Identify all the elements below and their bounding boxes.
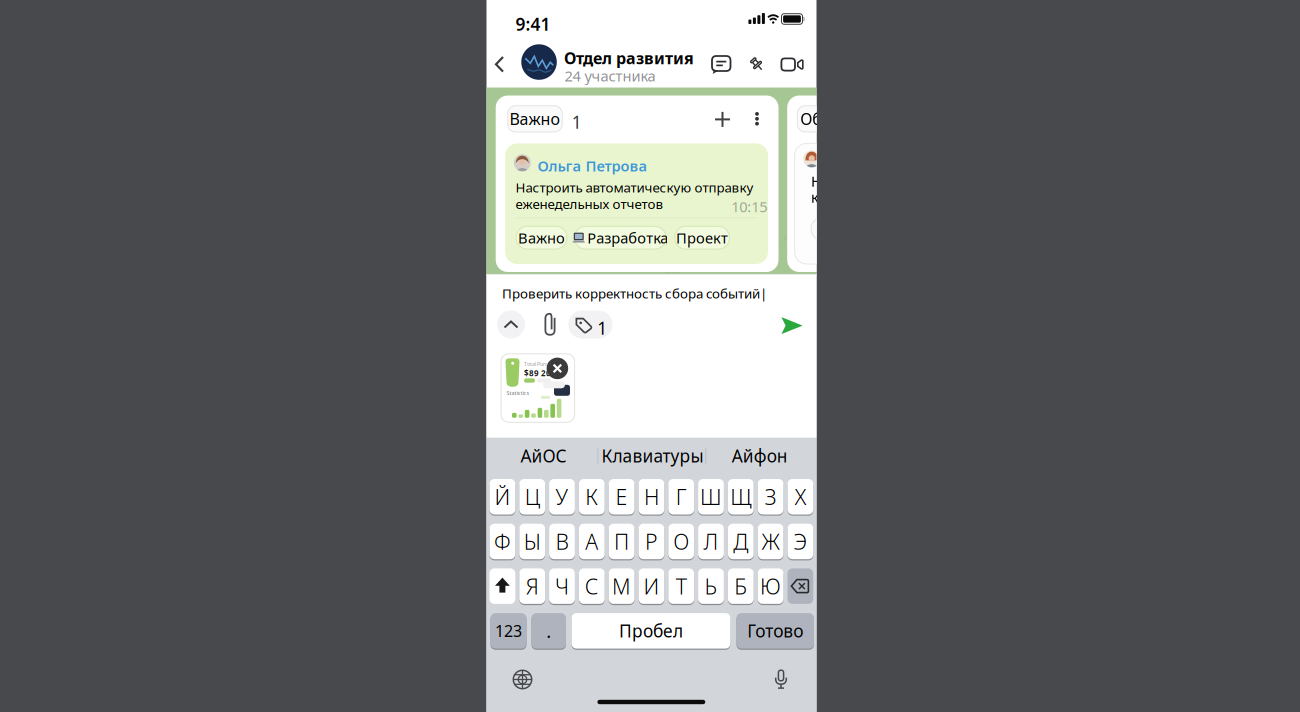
button[interactable]: М: [609, 568, 634, 604]
staticText: 24 участника: [564, 66, 655, 85]
button[interactable]: Х: [787, 479, 813, 514]
button[interactable]: Й: [489, 479, 515, 514]
button[interactable]: Ц: [519, 479, 545, 514]
staticText: АйОС: [520, 444, 566, 467]
button[interactable]: Меню: [751, 111, 763, 127]
button[interactable]: Айфон: [710, 441, 810, 471]
button[interactable]: Г: [668, 479, 694, 514]
staticText: О: [673, 527, 689, 556]
button[interactable]: Щ: [728, 479, 754, 514]
button[interactable]: Прикрепить файл: [543, 312, 559, 337]
button[interactable]: Р: [638, 524, 664, 559]
staticText: Ф: [494, 527, 511, 556]
staticText: А: [585, 527, 598, 556]
staticText: Т: [676, 572, 687, 600]
button[interactable]: Ч: [549, 568, 575, 604]
button[interactable]: Ш: [698, 479, 724, 514]
staticText: Д: [733, 527, 748, 556]
button[interactable]: Пробел: [571, 613, 730, 649]
button[interactable]: Е: [609, 479, 634, 514]
button[interactable]: Э: [787, 524, 813, 559]
staticText: 10:15: [731, 197, 767, 216]
button[interactable]: .: [531, 613, 566, 649]
button[interactable]: Удалить вложение: [547, 358, 568, 379]
staticText: Ю: [760, 572, 781, 600]
button[interactable]: Теги: [568, 311, 613, 338]
staticText: И: [643, 572, 659, 600]
staticText: Ь: [704, 572, 717, 600]
staticText: Пробел: [619, 619, 683, 642]
button[interactable]: В: [549, 524, 575, 559]
button[interactable]: Сменить клавиатуру: [512, 669, 532, 689]
button[interactable]: Удалить: [787, 568, 813, 604]
button[interactable]: Вложение: скриншот статистики: [501, 354, 575, 422]
staticText: Б: [734, 572, 747, 600]
staticText: Total Purchase: [524, 360, 560, 367]
staticText: 1: [572, 110, 582, 133]
button[interactable]: АйОС: [493, 441, 593, 471]
staticText: Г: [676, 483, 687, 511]
button[interactable]: О: [668, 524, 694, 559]
button[interactable]: Видеозвонок: [780, 57, 803, 73]
staticText: Важно: [518, 228, 565, 247]
staticText: Ц: [525, 483, 540, 511]
button[interactable]: Добавить: [714, 111, 730, 127]
button[interactable]: Важно: [516, 226, 567, 249]
staticText: Айфон: [732, 444, 788, 467]
button[interactable]: А: [579, 524, 605, 559]
button[interactable]: 123: [490, 613, 526, 649]
staticText: Проект: [676, 228, 728, 247]
staticText: С: [585, 572, 599, 600]
button[interactable]: Важно: [508, 106, 562, 132]
button[interactable]: Н: [638, 479, 664, 514]
button[interactable]: Ю: [758, 568, 783, 604]
button[interactable]: У: [549, 479, 575, 514]
staticText: еженедельных отчетов: [516, 195, 664, 213]
staticText: Е: [616, 483, 628, 511]
staticText: Настроить автоматическую отправку: [516, 178, 754, 196]
button[interactable]: Комментарии: [710, 54, 732, 76]
staticText: Л: [703, 527, 718, 556]
button[interactable]: Проект: [675, 226, 729, 249]
button[interactable]: Д: [728, 524, 754, 559]
button[interactable]: Готово: [736, 613, 814, 649]
staticText: Ольга Петрова: [537, 156, 647, 175]
button[interactable]: Разработка: [575, 226, 666, 249]
staticText: $89 203: [524, 368, 556, 378]
button[interactable]: Диктовка: [775, 669, 787, 689]
button[interactable]: Отправить: [781, 317, 803, 335]
staticText: У: [555, 483, 568, 511]
button[interactable]: Ь: [698, 568, 724, 604]
button[interactable]: Назад: [489, 50, 509, 78]
staticText: Й: [494, 483, 510, 511]
staticText: К: [585, 483, 598, 511]
button[interactable]: З: [758, 479, 783, 514]
button[interactable]: Л: [698, 524, 724, 559]
staticText: В: [555, 527, 568, 556]
staticText: Э: [793, 527, 807, 556]
staticText: .: [546, 618, 551, 643]
staticText: Разработка: [587, 228, 668, 247]
button[interactable]: С: [579, 568, 605, 604]
button[interactable]: Общее: [797, 106, 857, 132]
button[interactable]: Я: [519, 568, 545, 604]
button[interactable]: Свернуть: [497, 310, 525, 338]
button[interactable]: Закрепленные сообщения: [747, 55, 767, 75]
staticText: П: [614, 527, 629, 556]
button[interactable]: Клавиатуры: [603, 441, 703, 471]
button[interactable]: Профиль чата: [521, 44, 557, 80]
button[interactable]: Ф: [489, 524, 515, 559]
button[interactable]: Ж: [758, 524, 783, 559]
button[interactable]: П: [609, 524, 634, 559]
staticText: М: [612, 572, 631, 600]
button[interactable]: Б: [728, 568, 754, 604]
staticText: Ч: [555, 572, 569, 600]
button[interactable]: Ы: [519, 524, 545, 559]
staticText: Р: [645, 527, 658, 556]
button[interactable]: И: [638, 568, 664, 604]
button[interactable]: К: [579, 479, 605, 514]
button[interactable]: Т: [668, 568, 694, 604]
staticText: Настроить: [811, 171, 886, 191]
button[interactable]: Shift: [489, 568, 515, 604]
staticText: Общее: [800, 108, 854, 129]
